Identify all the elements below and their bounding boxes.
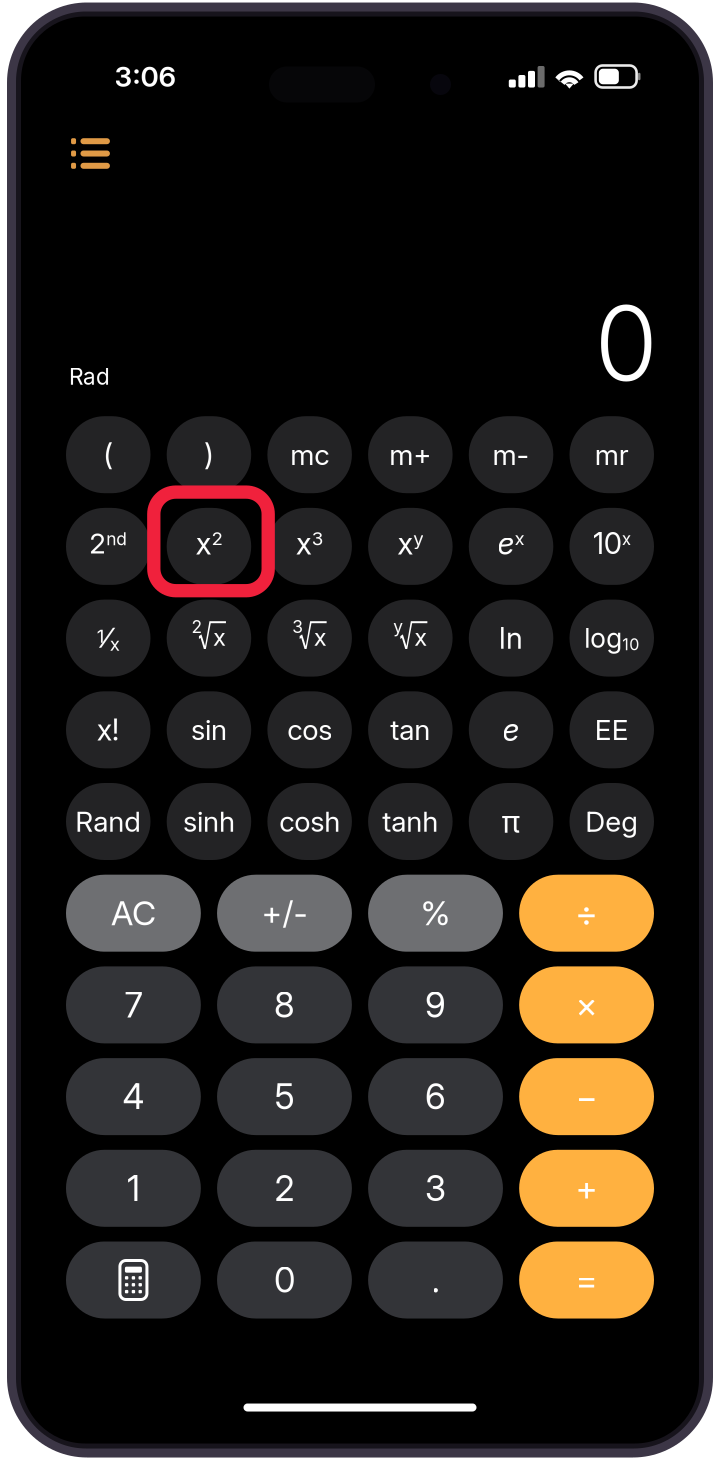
staticText: =: [576, 1259, 598, 1301]
staticText: ÷: [575, 891, 598, 935]
button[interactable]: 2: [167, 600, 251, 677]
staticText: 2: [191, 616, 202, 637]
button[interactable]: +/-: [217, 875, 352, 952]
staticText: x!: [97, 712, 120, 748]
button[interactable]: +: [519, 1150, 654, 1227]
staticText: 4: [122, 1076, 144, 1117]
staticText: EE: [595, 713, 629, 747]
button[interactable]: log10: [569, 600, 654, 677]
staticText: sinh: [183, 805, 235, 838]
staticText: x2: [195, 525, 222, 561]
staticText: 1: [127, 1167, 140, 1209]
staticText: +: [576, 1167, 598, 1209]
staticText: y: [393, 616, 403, 637]
button[interactable]: mr: [569, 416, 654, 493]
button[interactable]: x!: [66, 691, 150, 768]
staticText: xy: [397, 525, 423, 561]
button[interactable]: x2: [167, 508, 251, 585]
staticText: mr: [595, 438, 629, 472]
staticText: sin: [191, 713, 227, 747]
staticText: e: [503, 711, 520, 748]
staticText: Deg: [585, 805, 638, 838]
staticText: ): [204, 437, 214, 472]
staticText: log10: [584, 622, 639, 654]
button[interactable]: 10x: [569, 508, 654, 585]
staticText: 1⁄x: [97, 621, 120, 655]
button[interactable]: π: [469, 783, 553, 860]
button[interactable]: .: [368, 1241, 503, 1318]
button[interactable]: 6: [368, 1058, 503, 1135]
staticText: +/-: [261, 894, 307, 932]
staticText: 10x: [593, 526, 631, 561]
button[interactable]: ln: [469, 600, 553, 677]
button[interactable]: m+: [368, 416, 453, 493]
button[interactable]: 9: [368, 966, 503, 1043]
button[interactable]: 2: [217, 1150, 352, 1227]
staticText: 6: [425, 1076, 446, 1117]
button[interactable]: %: [368, 875, 503, 952]
staticText: 9: [425, 984, 446, 1026]
staticText: π: [502, 803, 521, 840]
button[interactable]: 4: [66, 1058, 201, 1135]
staticText: 0: [274, 1259, 295, 1301]
button[interactable]: Deg: [569, 783, 654, 860]
staticText: 5: [274, 1076, 294, 1117]
staticText: .: [431, 1259, 439, 1301]
staticText: 3: [292, 616, 303, 637]
button[interactable]: 3: [267, 600, 352, 677]
button[interactable]: xy: [368, 508, 453, 585]
button[interactable]: mc: [267, 416, 352, 493]
button[interactable]: tan: [368, 691, 453, 768]
staticText: x: [314, 623, 327, 652]
staticText: cos: [287, 713, 332, 747]
button[interactable]: 1⁄x: [66, 600, 150, 677]
staticText: Rad: [69, 363, 110, 390]
staticText: 3:06: [114, 60, 176, 93]
button[interactable]: (: [66, 416, 150, 493]
button[interactable]: sin: [167, 691, 251, 768]
button[interactable]: AC: [66, 875, 201, 952]
button[interactable]: ÷: [519, 875, 654, 952]
button[interactable]: ex: [469, 508, 553, 585]
button[interactable]: −: [519, 1058, 654, 1135]
button[interactable]: 7: [66, 966, 201, 1043]
button[interactable]: 5: [217, 1058, 352, 1135]
staticText: m-: [493, 438, 530, 472]
button[interactable]: sinh: [167, 783, 251, 860]
staticText: 0: [594, 281, 657, 405]
button[interactable]: 1: [66, 1150, 201, 1227]
button[interactable]: e: [469, 691, 553, 768]
staticText: ln: [499, 620, 523, 656]
button[interactable]: 8: [217, 966, 352, 1043]
staticText: (: [103, 437, 113, 472]
button[interactable]: EE: [569, 691, 654, 768]
staticText: x: [213, 623, 226, 652]
button[interactable]: =: [519, 1241, 654, 1318]
button[interactable]: History: [59, 125, 121, 181]
button[interactable]: 3: [368, 1150, 503, 1227]
staticText: Rand: [75, 805, 141, 838]
staticText: ex: [498, 525, 525, 561]
button[interactable]: cos: [267, 691, 352, 768]
staticText: 3: [425, 1167, 446, 1209]
staticText: %: [420, 893, 450, 933]
button[interactable]: Rand: [66, 783, 150, 860]
button[interactable]: 2nd: [66, 508, 150, 585]
staticText: −: [576, 1076, 598, 1117]
button[interactable]: cosh: [267, 783, 352, 860]
staticText: 8: [274, 984, 295, 1026]
staticText: 7: [124, 984, 142, 1026]
staticText: AC: [111, 893, 156, 933]
button[interactable]: x3: [267, 508, 352, 585]
button[interactable]: ×: [519, 966, 654, 1043]
button[interactable]: y: [368, 600, 453, 677]
button[interactable]: tanh: [368, 783, 453, 860]
staticText: cosh: [279, 805, 340, 838]
button[interactable]: Standard calculator: [66, 1241, 201, 1318]
button[interactable]: ): [167, 416, 251, 493]
staticText: x3: [296, 525, 324, 561]
staticText: ×: [576, 984, 598, 1026]
staticText: mc: [290, 438, 329, 472]
button[interactable]: 0: [217, 1241, 352, 1318]
button[interactable]: m-: [469, 416, 553, 493]
